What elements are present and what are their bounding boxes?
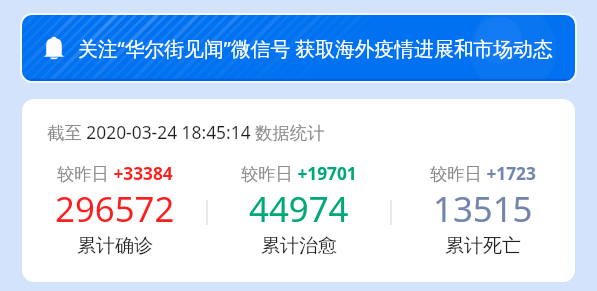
staticText: 累计治愈 [261,234,337,258]
staticText: 较昨日 +33384 [57,162,173,186]
button[interactable]: Notification [22,15,575,81]
staticText: 累计确诊 [77,234,153,258]
staticText: 13515 [433,185,533,232]
staticText: 44974 [249,185,349,232]
other: Notification [44,36,64,60]
staticText: 较昨日 +19701 [241,162,357,186]
staticText: 296572 [55,185,175,232]
staticText: 关注“华尔街见闻”微信号 获取海外疫情进展和市场动态 [78,35,553,62]
staticText: 较昨日 +1723 [430,162,536,186]
staticText: 截至 2020-03-24 18:45:14 数据统计 [47,120,325,144]
staticText: 累计死亡 [445,234,521,258]
